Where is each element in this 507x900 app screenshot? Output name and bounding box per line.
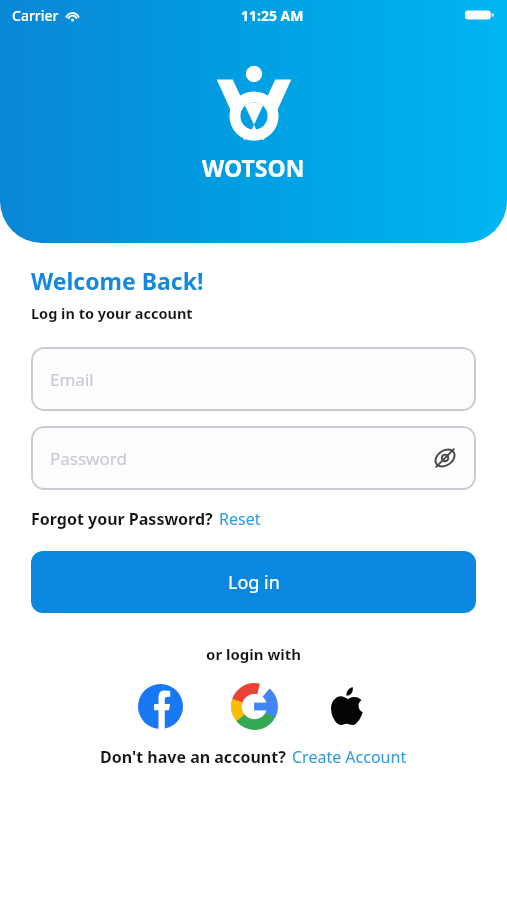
- staticText: Carrier: [12, 6, 59, 25]
- staticText: Log in to your account: [31, 303, 193, 323]
- button[interactable]: Create Account: [292, 746, 407, 768]
- staticText: or login with: [206, 644, 302, 664]
- staticText: Log in: [228, 570, 280, 595]
- button[interactable]: Password: [31, 426, 476, 490]
- staticText: WOTSON: [202, 152, 305, 183]
- button[interactable]: Reset: [219, 508, 261, 530]
- button[interactable]: Email: [31, 347, 476, 411]
- staticText: Reset: [219, 508, 261, 530]
- staticText: Forgot your Password?: [31, 508, 213, 530]
- button[interactable]: Log in with Apple: [322, 680, 374, 732]
- button[interactable]: Show password: [428, 441, 462, 475]
- staticText: Password: [50, 447, 428, 470]
- staticText: Don't have an account?: [100, 746, 286, 768]
- button[interactable]: Log in: [31, 551, 476, 613]
- staticText: 11:25 AM: [241, 6, 304, 25]
- button[interactable]: Log in with Facebook: [134, 680, 186, 732]
- staticText: Welcome Back!: [31, 265, 204, 296]
- button[interactable]: Log in with Google: [228, 680, 280, 732]
- staticText: Create Account: [292, 746, 407, 768]
- staticText: Email: [50, 368, 462, 391]
